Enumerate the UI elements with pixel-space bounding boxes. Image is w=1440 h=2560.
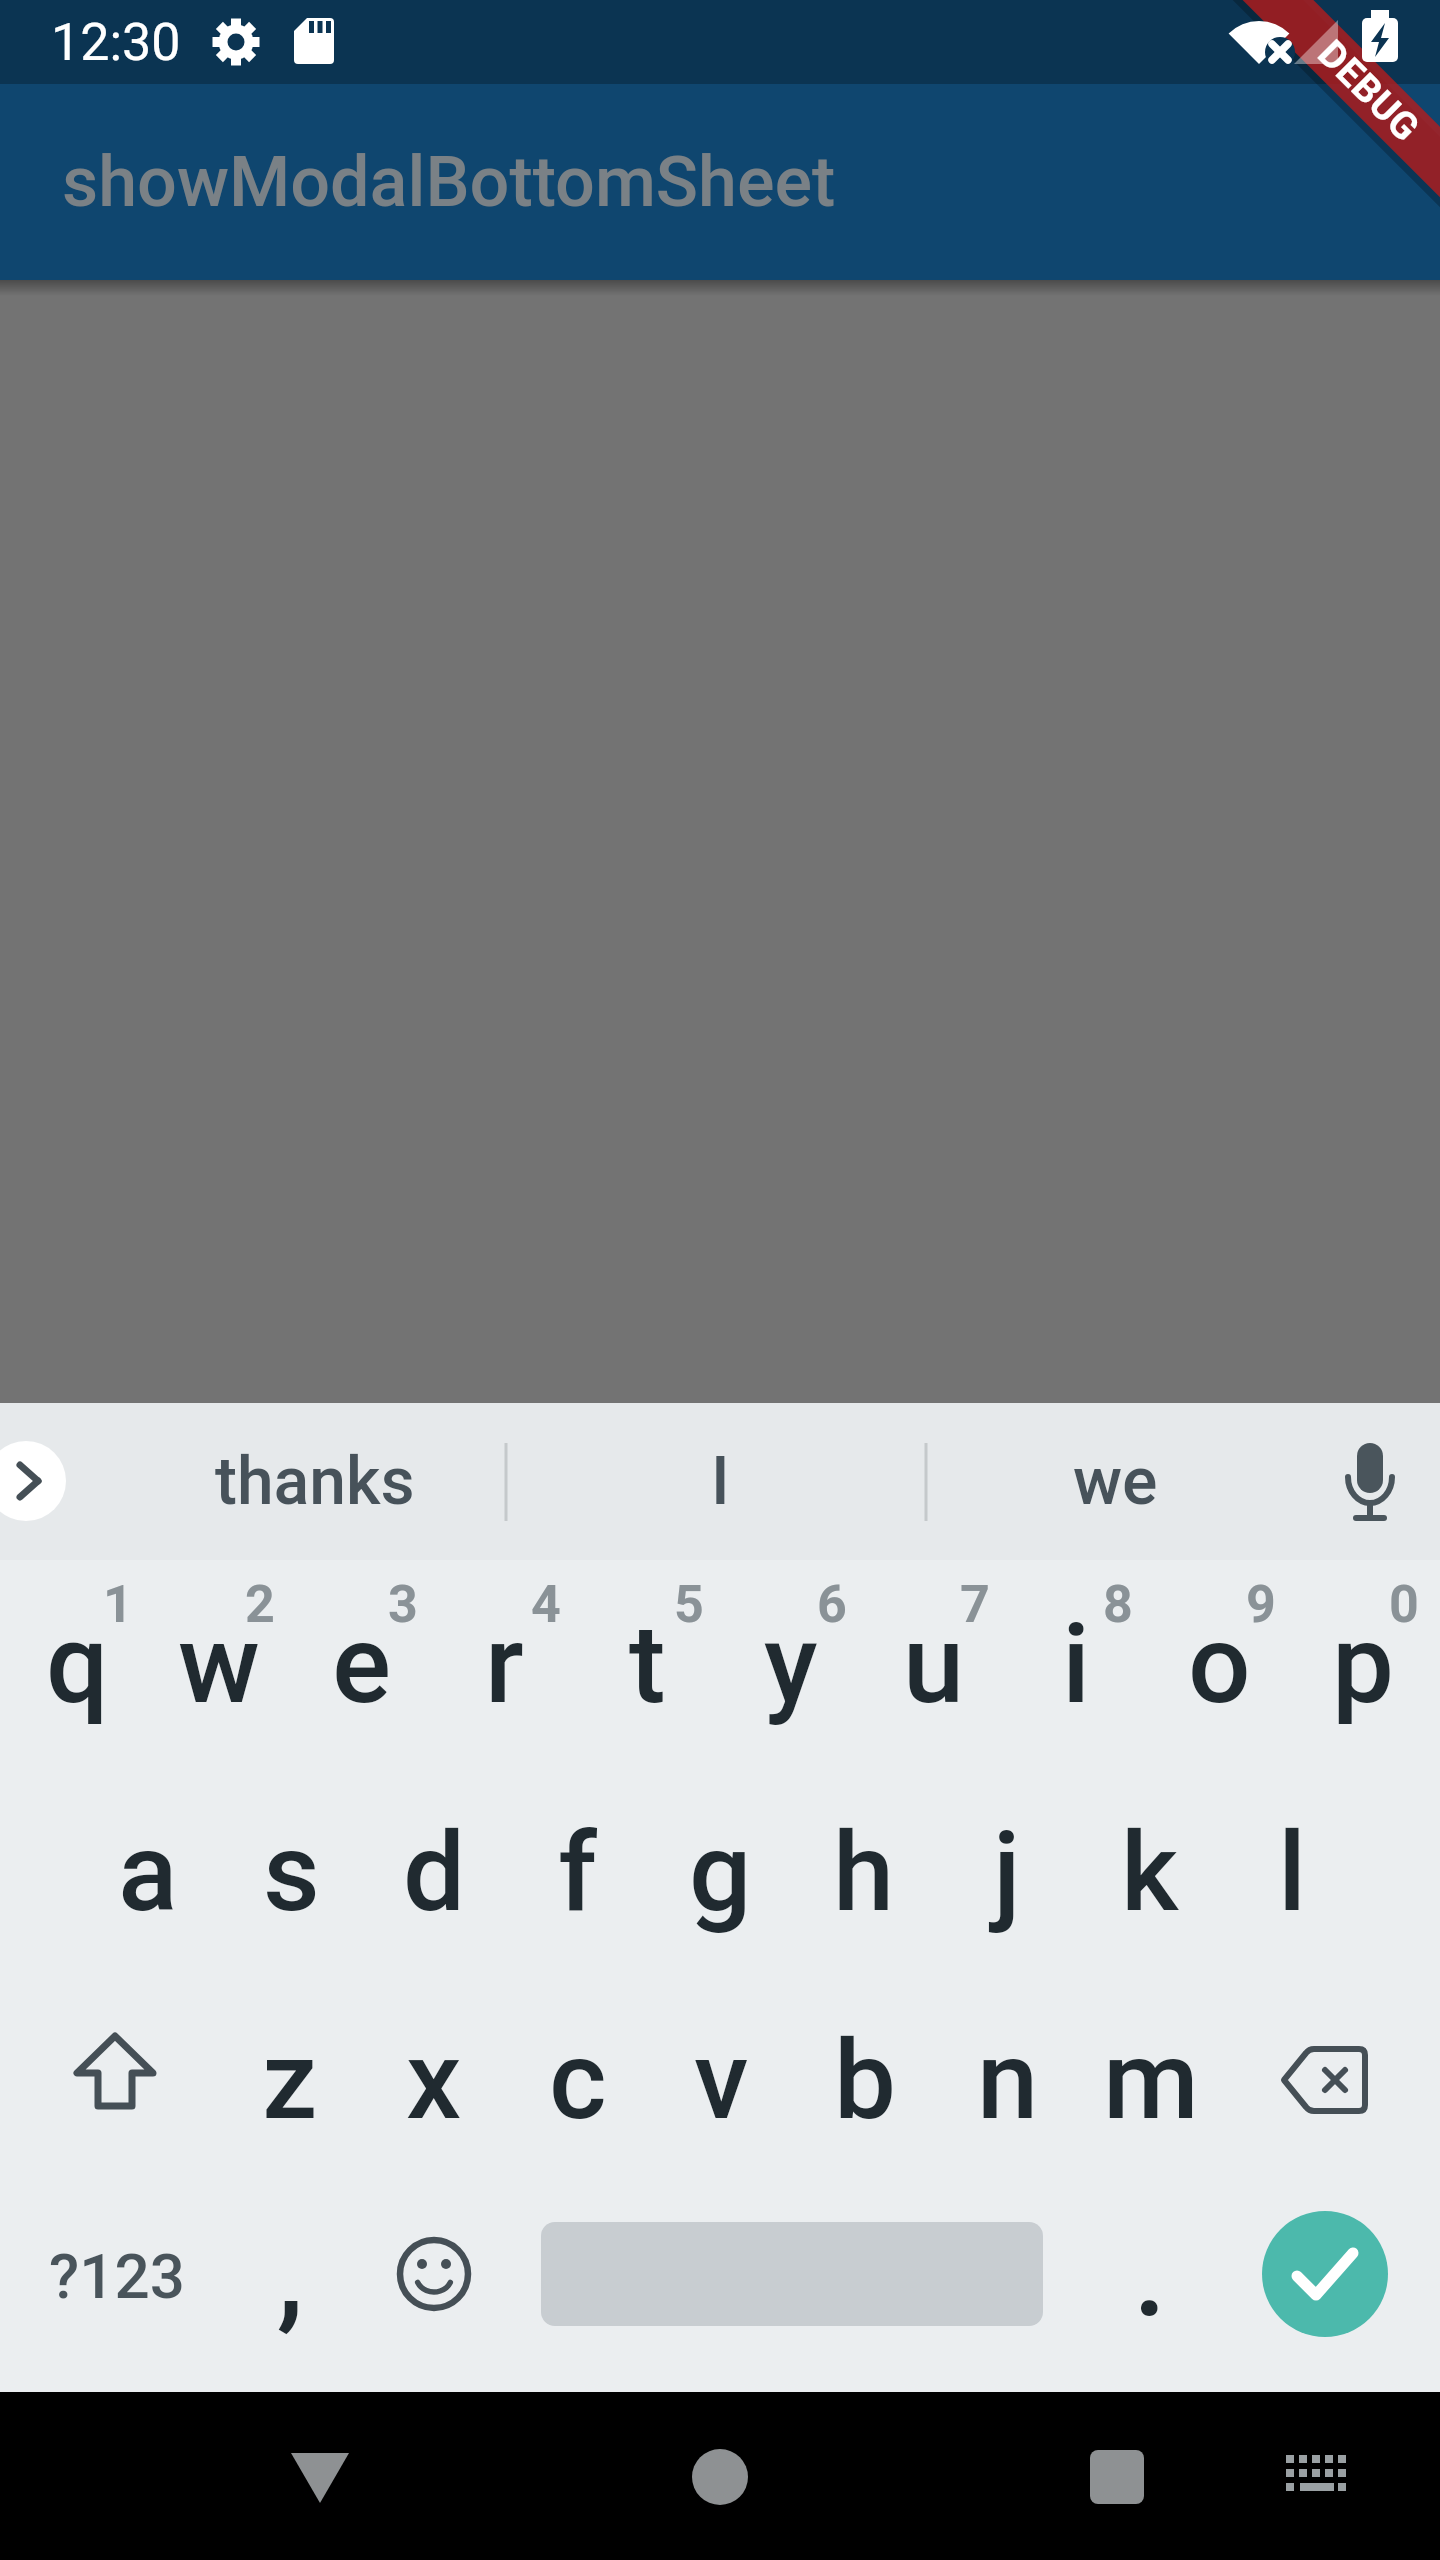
staticText: e bbox=[332, 1600, 392, 1729]
staticText: I bbox=[711, 1443, 730, 1520]
button[interactable]: 5 bbox=[576, 1560, 719, 1768]
button[interactable]: 1 bbox=[6, 1560, 148, 1768]
staticText: c bbox=[549, 2016, 607, 2145]
button[interactable]: s bbox=[220, 1768, 363, 1976]
button[interactable]: I bbox=[570, 1403, 870, 1560]
staticText: l bbox=[1278, 1808, 1307, 1937]
button[interactable]: 2 bbox=[148, 1560, 290, 1768]
button[interactable]: ?123 bbox=[0, 2184, 218, 2392]
button[interactable]: h bbox=[792, 1768, 935, 1976]
staticText: s bbox=[263, 1808, 320, 1937]
button[interactable]: 3 bbox=[290, 1560, 433, 1768]
button[interactable] bbox=[506, 2184, 1078, 2392]
button[interactable]: k bbox=[1078, 1768, 1221, 1976]
staticText: m bbox=[1103, 2016, 1199, 2145]
staticText: b bbox=[834, 2016, 896, 2145]
staticText: 4 bbox=[531, 1574, 561, 1635]
staticText: 5 bbox=[674, 1574, 704, 1635]
staticText: a bbox=[118, 1808, 178, 1937]
button[interactable] bbox=[827, 2392, 1240, 2560]
button[interactable]: c bbox=[506, 1976, 650, 2184]
button[interactable] bbox=[414, 2392, 827, 2560]
staticText: showModalBottomSheet bbox=[62, 141, 836, 223]
button[interactable]: 6 bbox=[719, 1560, 862, 1768]
staticText: v bbox=[694, 2016, 749, 2145]
button[interactable] bbox=[1222, 2184, 1440, 2392]
button[interactable]: b bbox=[793, 1976, 936, 2184]
button[interactable]: g bbox=[649, 1768, 792, 1976]
button[interactable] bbox=[1222, 1976, 1440, 2184]
button[interactable]: 4 bbox=[433, 1560, 576, 1768]
staticText: u bbox=[903, 1600, 965, 1729]
button[interactable]: n bbox=[936, 1976, 1079, 2184]
button[interactable]: j bbox=[935, 1768, 1078, 1976]
button[interactable]: 7 bbox=[862, 1560, 1005, 1768]
button[interactable] bbox=[1240, 2392, 1440, 2560]
button[interactable]: d bbox=[363, 1768, 506, 1976]
button[interactable]: thanks bbox=[165, 1403, 465, 1560]
staticText: j bbox=[993, 1808, 1021, 1937]
button[interactable]: 0 bbox=[1291, 1560, 1434, 1768]
staticText: 6 bbox=[817, 1574, 847, 1635]
staticText: . bbox=[1133, 2204, 1167, 2345]
staticText: 0 bbox=[1389, 1574, 1419, 1635]
staticText: d bbox=[403, 1808, 466, 1937]
button[interactable]: 8 bbox=[1005, 1560, 1148, 1768]
button[interactable]: a bbox=[76, 1768, 220, 1976]
button[interactable]: , bbox=[218, 2184, 362, 2392]
button[interactable]: f bbox=[506, 1768, 649, 1976]
staticText: 9 bbox=[1246, 1574, 1276, 1635]
staticText: t bbox=[629, 1600, 666, 1729]
button[interactable]: v bbox=[650, 1976, 793, 2184]
button[interactable] bbox=[0, 1976, 218, 2184]
staticText: p bbox=[1332, 1600, 1394, 1729]
staticText: i bbox=[1062, 1600, 1091, 1729]
button[interactable]: 9 bbox=[1148, 1560, 1291, 1768]
staticText: f bbox=[558, 1808, 597, 1937]
staticText: 8 bbox=[1103, 1574, 1133, 1635]
staticText: 2 bbox=[245, 1574, 275, 1635]
staticText: thanks bbox=[215, 1443, 415, 1520]
staticText: h bbox=[833, 1808, 895, 1937]
staticText: 7 bbox=[960, 1574, 990, 1635]
staticText: q bbox=[46, 1600, 109, 1729]
button[interactable]: z bbox=[218, 1976, 362, 2184]
staticText: r bbox=[485, 1600, 524, 1729]
button[interactable]: l bbox=[1221, 1768, 1364, 1976]
button[interactable]: m bbox=[1079, 1976, 1222, 2184]
staticText: x bbox=[406, 2016, 462, 2145]
button[interactable]: x bbox=[362, 1976, 506, 2184]
button[interactable] bbox=[362, 2184, 506, 2392]
staticText: 1 bbox=[103, 1574, 133, 1635]
staticText: k bbox=[1121, 1808, 1179, 1937]
staticText: we bbox=[1073, 1443, 1158, 1520]
staticText: g bbox=[689, 1808, 752, 1937]
button[interactable]: we bbox=[965, 1403, 1265, 1560]
staticText: DEBUG bbox=[1309, 31, 1428, 151]
staticText: 12:30 bbox=[51, 12, 181, 73]
staticText: 3 bbox=[388, 1574, 418, 1635]
button[interactable] bbox=[0, 2392, 414, 2560]
staticText: ?123 bbox=[49, 2240, 185, 2313]
staticText: , bbox=[277, 2204, 304, 2345]
staticText: y bbox=[764, 1600, 818, 1729]
staticText: z bbox=[262, 2016, 318, 2145]
staticText: w bbox=[178, 1600, 260, 1729]
staticText: o bbox=[1188, 1600, 1251, 1729]
staticText: n bbox=[977, 2016, 1039, 2145]
button[interactable]: . bbox=[1078, 2184, 1222, 2392]
